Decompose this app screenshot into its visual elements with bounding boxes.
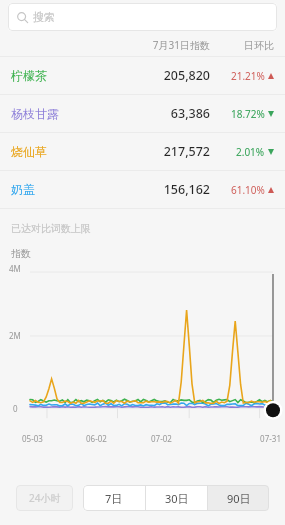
staticText: 05-03 bbox=[22, 433, 86, 444]
staticText: 205,820 bbox=[118, 67, 210, 84]
staticText: 07-02 bbox=[151, 433, 216, 444]
staticText: 18.72% bbox=[231, 107, 265, 121]
button[interactable]: 30日 bbox=[146, 485, 207, 511]
staticText: 63,386 bbox=[118, 105, 210, 122]
staticText: 柠檬茶 bbox=[11, 68, 47, 83]
staticText: 2M bbox=[9, 330, 21, 341]
button[interactable]: 7日 bbox=[83, 485, 145, 511]
button[interactable]: 柠檬茶 bbox=[0, 57, 285, 94]
staticText: 0 bbox=[13, 403, 18, 414]
staticText: 奶盖 bbox=[11, 182, 35, 197]
other: Search bbox=[17, 12, 28, 23]
button[interactable]: 奶盖 bbox=[0, 171, 285, 208]
staticText: 90日 bbox=[227, 491, 251, 506]
staticText: 日环比 bbox=[210, 39, 274, 52]
staticText: 2.01% bbox=[236, 145, 265, 159]
button[interactable]: 烧仙草 bbox=[0, 133, 285, 170]
staticText: 4M bbox=[9, 263, 21, 274]
staticText: 7日 bbox=[105, 491, 123, 506]
staticText: 杨枝甘露 bbox=[11, 106, 59, 121]
staticText: 7月31日指数 bbox=[118, 38, 210, 52]
staticText: 烧仙草 bbox=[11, 144, 47, 159]
button[interactable]: 90日 bbox=[208, 485, 269, 511]
staticText: 30日 bbox=[165, 491, 189, 506]
staticText: 搜索 bbox=[33, 10, 55, 24]
button[interactable]: 24小时 bbox=[16, 485, 73, 511]
staticText: 06-02 bbox=[86, 433, 151, 444]
button[interactable]: 杨枝甘露 bbox=[0, 95, 285, 132]
staticText: 07-31 bbox=[216, 433, 281, 444]
button[interactable]: Search bbox=[8, 3, 277, 31]
staticText: 24小时 bbox=[29, 491, 61, 505]
staticText: 21.21% bbox=[231, 69, 265, 83]
staticText: 已达对比词数上限 bbox=[11, 222, 91, 235]
staticText: 61.10% bbox=[231, 183, 265, 197]
staticText: 217,572 bbox=[118, 143, 210, 160]
staticText: 指数 bbox=[11, 247, 31, 260]
staticText: 156,162 bbox=[118, 181, 210, 198]
